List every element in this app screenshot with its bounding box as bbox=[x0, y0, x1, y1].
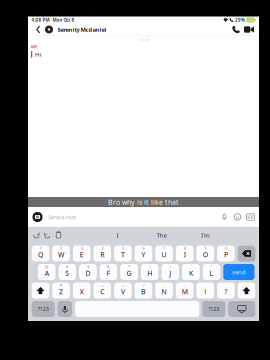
button[interactable]: " bbox=[203, 264, 220, 280]
button[interactable]: + bbox=[93, 282, 111, 298]
button[interactable]: & bbox=[100, 264, 117, 280]
staticText: 8 bbox=[184, 245, 186, 251]
staticText: . bbox=[225, 282, 226, 288]
button[interactable]: 8 bbox=[176, 245, 193, 261]
button[interactable]: # bbox=[58, 264, 76, 280]
staticText: R bbox=[100, 250, 104, 259]
button[interactable] bbox=[238, 245, 255, 261]
button[interactable]: = bbox=[114, 282, 132, 298]
button[interactable]: : bbox=[176, 282, 193, 298]
staticText: N bbox=[162, 287, 167, 296]
staticText: : bbox=[184, 282, 185, 288]
button[interactable]: Redo bbox=[42, 228, 53, 242]
staticText: Z bbox=[59, 287, 63, 296]
button[interactable]: Serenity Mcdaniel bbox=[45, 23, 107, 35]
staticText: 5 bbox=[122, 245, 124, 251]
staticText: 4 bbox=[101, 245, 103, 251]
staticText: J bbox=[169, 268, 171, 278]
staticText: ' bbox=[190, 264, 191, 269]
staticText: = bbox=[122, 282, 124, 288]
button[interactable]: The bbox=[139, 228, 183, 242]
staticText: " bbox=[210, 264, 212, 269]
staticText: L bbox=[209, 268, 213, 278]
button[interactable]: 7 bbox=[155, 245, 173, 261]
button[interactable]: . bbox=[217, 282, 235, 298]
button[interactable]: 1 bbox=[32, 245, 49, 261]
button[interactable]: 0 bbox=[217, 245, 235, 261]
staticText: send bbox=[232, 268, 246, 276]
staticText: ; bbox=[164, 282, 165, 288]
staticText: P bbox=[224, 250, 228, 259]
button[interactable]: Back bbox=[32, 23, 45, 35]
staticText: H bbox=[147, 268, 152, 278]
button[interactable]: Paste bbox=[53, 228, 64, 242]
staticText: O bbox=[203, 250, 208, 259]
staticText: @ bbox=[45, 264, 49, 269]
button[interactable]: ) bbox=[161, 264, 179, 280]
button[interactable]: Voice call bbox=[230, 23, 242, 35]
button[interactable] bbox=[238, 282, 255, 298]
staticText: GIF bbox=[247, 214, 253, 220]
staticText: U bbox=[162, 250, 167, 259]
staticText: % bbox=[60, 282, 63, 288]
staticText: 3 bbox=[81, 245, 83, 251]
staticText: B bbox=[141, 287, 146, 296]
button[interactable]: ' bbox=[182, 264, 200, 280]
staticText: 29% bbox=[235, 17, 245, 23]
button[interactable]: 6 bbox=[135, 245, 152, 261]
button[interactable]: send bbox=[223, 264, 254, 280]
staticText: & bbox=[107, 264, 110, 269]
staticText: D bbox=[85, 268, 90, 278]
staticText: $ bbox=[87, 264, 89, 269]
staticText: - bbox=[81, 282, 82, 288]
staticText: V bbox=[121, 287, 125, 296]
button[interactable]: ?123 bbox=[32, 301, 55, 317]
staticText: 0 bbox=[225, 245, 227, 251]
staticText: I'm bbox=[201, 231, 210, 239]
button[interactable] bbox=[58, 301, 72, 317]
staticText: C bbox=[100, 287, 104, 296]
button[interactable] bbox=[32, 282, 49, 298]
staticText: * bbox=[128, 264, 130, 269]
staticText: W bbox=[58, 250, 64, 259]
button[interactable]: 5 bbox=[114, 245, 132, 261]
button[interactable]: Attach bbox=[218, 209, 231, 225]
button[interactable]: ( bbox=[141, 264, 158, 280]
button[interactable]: Undo bbox=[31, 228, 42, 242]
button[interactable]: 4 bbox=[93, 245, 111, 261]
button[interactable]: * bbox=[120, 264, 138, 280]
button[interactable]: Camera bbox=[31, 209, 44, 225]
staticText: I bbox=[184, 250, 186, 259]
button[interactable]: % bbox=[52, 282, 70, 298]
button[interactable]: I bbox=[95, 228, 139, 242]
button[interactable]: / bbox=[135, 282, 152, 298]
staticText: T bbox=[121, 250, 125, 259]
button[interactable]: 9 bbox=[196, 245, 214, 261]
staticText: M bbox=[182, 287, 188, 296]
staticText: The bbox=[156, 231, 166, 239]
button[interactable]: , bbox=[196, 282, 214, 298]
staticText: ? bbox=[224, 287, 227, 296]
staticText: Q bbox=[38, 250, 43, 259]
staticText: 9 bbox=[204, 245, 206, 251]
button[interactable]: - bbox=[73, 282, 90, 298]
staticText: , bbox=[205, 282, 206, 288]
button[interactable]: Stickers bbox=[231, 209, 244, 225]
staticText: Serenity Mcdaniel bbox=[58, 26, 107, 33]
staticText: ) bbox=[170, 264, 171, 269]
staticText: + bbox=[101, 282, 103, 288]
button[interactable]: 2 bbox=[52, 245, 70, 261]
staticText: ( bbox=[149, 264, 150, 269]
button[interactable]: 3 bbox=[73, 245, 90, 261]
button[interactable] bbox=[228, 301, 255, 317]
button[interactable]: Video call bbox=[242, 23, 256, 35]
button[interactable]: GIF bbox=[244, 209, 257, 225]
button[interactable]: @ bbox=[38, 264, 55, 280]
staticText: Bro why is it like that bbox=[108, 197, 179, 207]
button[interactable]: ?123 bbox=[202, 301, 225, 317]
button[interactable]: I'm bbox=[183, 228, 227, 242]
button[interactable]: Send a chat bbox=[44, 209, 131, 225]
button[interactable]: $ bbox=[79, 264, 97, 280]
button[interactable]: ; bbox=[155, 282, 173, 298]
